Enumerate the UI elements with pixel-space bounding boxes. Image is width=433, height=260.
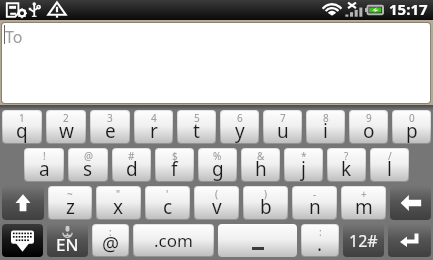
staticText: w: [59, 118, 74, 143]
button[interactable]: 4: [135, 111, 172, 143]
button[interactable]: 5: [178, 111, 215, 143]
staticText: !: [43, 149, 46, 163]
button[interactable]: ): [244, 187, 287, 219]
button[interactable]: &: [242, 149, 279, 181]
staticText: z: [66, 194, 75, 219]
button[interactable]: 1: [3, 111, 41, 143]
staticText: v: [212, 194, 222, 219]
staticText: :: [319, 225, 322, 239]
staticText: -: [313, 187, 317, 201]
button[interactable]: $: [156, 149, 193, 181]
staticText: #: [128, 149, 135, 163]
staticText: %: [213, 149, 222, 163]
button[interactable]: @: [69, 149, 107, 181]
button[interactable]: Backspace: [390, 186, 431, 220]
staticText: n: [309, 194, 321, 219]
staticText: p: [406, 118, 418, 143]
staticText: ": [116, 187, 121, 201]
staticText: y: [235, 118, 245, 143]
staticText: EN: [56, 233, 79, 256]
button[interactable]: EN: [47, 224, 88, 257]
staticText: +: [361, 187, 367, 201]
staticText: d: [126, 156, 138, 181]
button[interactable]: !: [25, 149, 63, 181]
staticText: ): [264, 187, 267, 201]
staticText: b: [260, 194, 272, 219]
staticText: 6: [237, 111, 243, 125]
button[interactable]: *: [285, 149, 322, 181]
staticText: .com: [154, 229, 193, 252]
button[interactable]: -: [293, 187, 336, 219]
button[interactable]: Hide keyboard: [2, 224, 43, 257]
staticText: h: [255, 156, 267, 181]
button[interactable]: :: [302, 225, 338, 256]
staticText: @: [84, 149, 93, 163]
button[interactable]: .com: [134, 225, 213, 256]
button[interactable]: ": [97, 187, 140, 219]
staticText: To: [5, 26, 23, 48]
staticText: g: [212, 156, 224, 181]
button[interactable]: 2: [47, 111, 85, 143]
staticText: q: [16, 118, 28, 143]
staticText: 12#: [349, 230, 378, 252]
button[interactable]: Shift: [2, 186, 44, 220]
staticText: 2: [63, 111, 69, 125]
button[interactable]: 9: [350, 111, 387, 143]
staticText: 4: [151, 111, 157, 125]
staticText: r: [150, 118, 158, 143]
staticText: k: [341, 156, 352, 181]
staticText: a: [39, 156, 50, 181]
staticText: 7: [280, 111, 286, 125]
staticText: $: [172, 149, 178, 163]
staticText: :: [109, 225, 112, 239]
button[interactable]: Enter: [388, 224, 431, 257]
staticText: &: [257, 149, 265, 163]
staticText: ~: [67, 187, 73, 201]
button[interactable]: 12#: [343, 224, 384, 257]
button[interactable]: ~: [49, 187, 91, 219]
button[interactable]: 3: [91, 111, 129, 143]
button[interactable]: %: [199, 149, 236, 181]
button[interactable]: Space: [218, 224, 297, 257]
staticText: 9: [366, 111, 372, 125]
staticText: (: [215, 187, 218, 201]
button[interactable]: ?: [328, 149, 365, 181]
staticText: 5: [194, 111, 200, 125]
staticText: t: [193, 118, 200, 143]
staticText: u: [277, 118, 289, 143]
button[interactable]: 7: [264, 111, 301, 143]
staticText: i: [323, 118, 328, 143]
staticText: l: [387, 156, 392, 181]
button[interactable]: ': [146, 187, 189, 219]
button[interactable]: 6: [221, 111, 258, 143]
button[interactable]: 8: [307, 111, 344, 143]
staticText: x: [113, 194, 124, 219]
staticText: f: [171, 156, 178, 181]
button[interactable]: (: [195, 187, 238, 219]
staticText: c: [163, 194, 173, 219]
staticText: o: [363, 118, 375, 143]
staticText: m: [355, 194, 373, 219]
button[interactable]: 0: [393, 111, 430, 143]
staticText: e: [105, 118, 116, 143]
button[interactable]: #: [113, 149, 150, 181]
button[interactable]: :: [93, 225, 128, 256]
staticText: ': [166, 187, 169, 201]
button[interactable]: /: [371, 149, 408, 181]
staticText: .: [317, 231, 323, 256]
staticText: ?: [344, 149, 349, 163]
button[interactable]: To: [2, 23, 430, 103]
staticText: 0: [409, 111, 415, 125]
staticText: 1: [19, 111, 25, 125]
staticText: j: [301, 156, 306, 181]
staticText: 15:17: [389, 0, 428, 19]
staticText: 3: [107, 111, 113, 125]
staticText: *: [301, 149, 307, 163]
staticText: /: [388, 149, 392, 163]
staticText: @: [102, 231, 120, 256]
button[interactable]: +: [342, 187, 385, 219]
staticText: s: [83, 156, 93, 181]
staticText: 8: [323, 111, 329, 125]
